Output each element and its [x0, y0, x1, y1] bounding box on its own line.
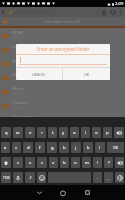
- button[interactable]: Shift: [1, 157, 11, 168]
- button[interactable]: q: [1, 127, 11, 138]
- button[interactable]: Podcasts: [0, 126, 125, 140]
- staticText: u: [73, 130, 76, 136]
- button[interactable]: CANCEL: [16, 68, 62, 80]
- button[interactable]: u: [70, 127, 79, 138]
- button[interactable]: o: [92, 127, 101, 138]
- staticText: Backups: [12, 184, 29, 190]
- staticText: 2:09: [115, 1, 124, 7]
- staticText: Android: [12, 58, 28, 64]
- button[interactable]: m: [82, 157, 91, 168]
- staticText: Alarms: [12, 156, 26, 162]
- staticText: l: [99, 145, 101, 151]
- button[interactable]: .: [93, 172, 102, 183]
- button[interactable]: Download: [0, 42, 125, 56]
- staticText: t: [52, 130, 54, 136]
- button[interactable]: !: [93, 157, 102, 168]
- button[interactable]: Ringtones: [0, 140, 125, 154]
- button[interactable]: ,: [104, 172, 113, 183]
- staticText: k: [87, 145, 90, 151]
- button[interactable]: d: [23, 142, 33, 153]
- staticText: a: [4, 145, 7, 151]
- button[interactable]: Recent apps: [77, 185, 97, 200]
- button[interactable]: Emoji: [37, 172, 46, 183]
- staticText: Music: [12, 86, 24, 92]
- button[interactable]: i: [81, 127, 90, 138]
- button[interactable]: a: [1, 142, 10, 153]
- staticText: i: [85, 130, 87, 136]
- button[interactable]: OK: [107, 142, 124, 153]
- button[interactable]: Notifications: [0, 168, 125, 182]
- button[interactable]: Alarms: [0, 154, 125, 168]
- staticText: x: [29, 160, 32, 166]
- button[interactable]: ♪: [25, 172, 35, 183]
- staticText: /storage/emulated/0: [45, 19, 81, 24]
- button[interactable]: Backspace: [115, 157, 124, 168]
- staticText: h: [63, 145, 66, 151]
- staticText: 3 items: [12, 134, 23, 138]
- staticText: ?: [108, 160, 110, 166]
- button[interactable]: Music: [0, 84, 125, 98]
- button[interactable]: Change keyboard: [115, 172, 124, 183]
- button[interactable]: Navigate up: [0, 7, 6, 17]
- button[interactable]: v: [49, 157, 58, 168]
- staticText: OK: [84, 72, 90, 77]
- button[interactable]: w: [13, 127, 23, 138]
- button[interactable]: s: [12, 142, 21, 153]
- staticText: OK: [113, 145, 119, 150]
- staticText: 1 item: [12, 176, 22, 180]
- button[interactable]: l: [95, 142, 105, 153]
- staticText: v: [52, 160, 55, 166]
- staticText: d: [27, 145, 30, 151]
- staticText: f: [39, 145, 41, 151]
- staticText: w: [16, 130, 20, 136]
- button[interactable]: Documents: [0, 112, 125, 126]
- button[interactable]: k: [83, 142, 93, 153]
- button[interactable]: c: [37, 157, 47, 168]
- staticText: ?123: [3, 176, 10, 180]
- staticText: y: [62, 130, 65, 136]
- button[interactable]: ?: [104, 157, 113, 168]
- button[interactable]: y: [59, 127, 68, 138]
- staticText: Ringtones: [12, 142, 32, 148]
- button[interactable]: ?123: [1, 172, 11, 183]
- staticText: Podcasts: [12, 128, 30, 134]
- button[interactable]: Android: [0, 56, 125, 70]
- button[interactable]: Download: [99, 7, 108, 17]
- staticText: b: [63, 160, 66, 166]
- button[interactable]: f: [35, 142, 45, 153]
- staticText: Notifications: [12, 170, 37, 176]
- staticText: o: [95, 130, 98, 136]
- button[interactable]: More options: [117, 7, 124, 17]
- button[interactable]: h: [59, 142, 69, 153]
- button[interactable]: Refresh: [108, 7, 117, 17]
- staticText: Pictures: [12, 100, 28, 106]
- button[interactable]: OK: [63, 68, 110, 80]
- staticText: n: [74, 160, 77, 166]
- button[interactable]: Backspace: [114, 127, 124, 138]
- button[interactable]: Movies: [0, 70, 125, 84]
- button[interactable]: Home: [53, 185, 73, 200]
- staticText: 2 items: [12, 162, 23, 166]
- staticText: .: [97, 175, 99, 181]
- button[interactable]: z: [13, 157, 23, 168]
- button[interactable]: Pictures: [0, 98, 125, 112]
- button[interactable]: DCIM: [0, 28, 125, 42]
- button[interactable]: p: [103, 127, 112, 138]
- button[interactable]: r: [37, 127, 46, 138]
- button[interactable]: x: [25, 157, 35, 168]
- button[interactable]: t: [48, 127, 57, 138]
- button[interactable]: e: [25, 127, 35, 138]
- button[interactable]: Voice input: [13, 172, 23, 183]
- button[interactable]: Storage root: [2, 19, 8, 25]
- button[interactable]: Backups: [0, 182, 125, 196]
- button[interactable]: n: [71, 157, 80, 168]
- staticText: z: [17, 160, 19, 166]
- button[interactable]: Back: [29, 185, 49, 200]
- button[interactable]: j: [71, 142, 81, 153]
- button[interactable]: b: [60, 157, 69, 168]
- button[interactable]: g: [47, 142, 57, 153]
